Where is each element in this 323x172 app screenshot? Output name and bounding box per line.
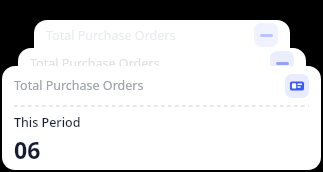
staticText: Total Purchase Orders	[46, 27, 176, 44]
staticText: Total Purchase Orders	[14, 77, 144, 94]
staticText: This Period	[14, 114, 81, 131]
staticText: 06	[14, 134, 41, 165]
button[interactable]: Purchase orders	[285, 74, 309, 98]
staticText: Total Purchase Orders	[30, 55, 160, 72]
button[interactable]: Total Purchase Orders	[2, 66, 321, 170]
